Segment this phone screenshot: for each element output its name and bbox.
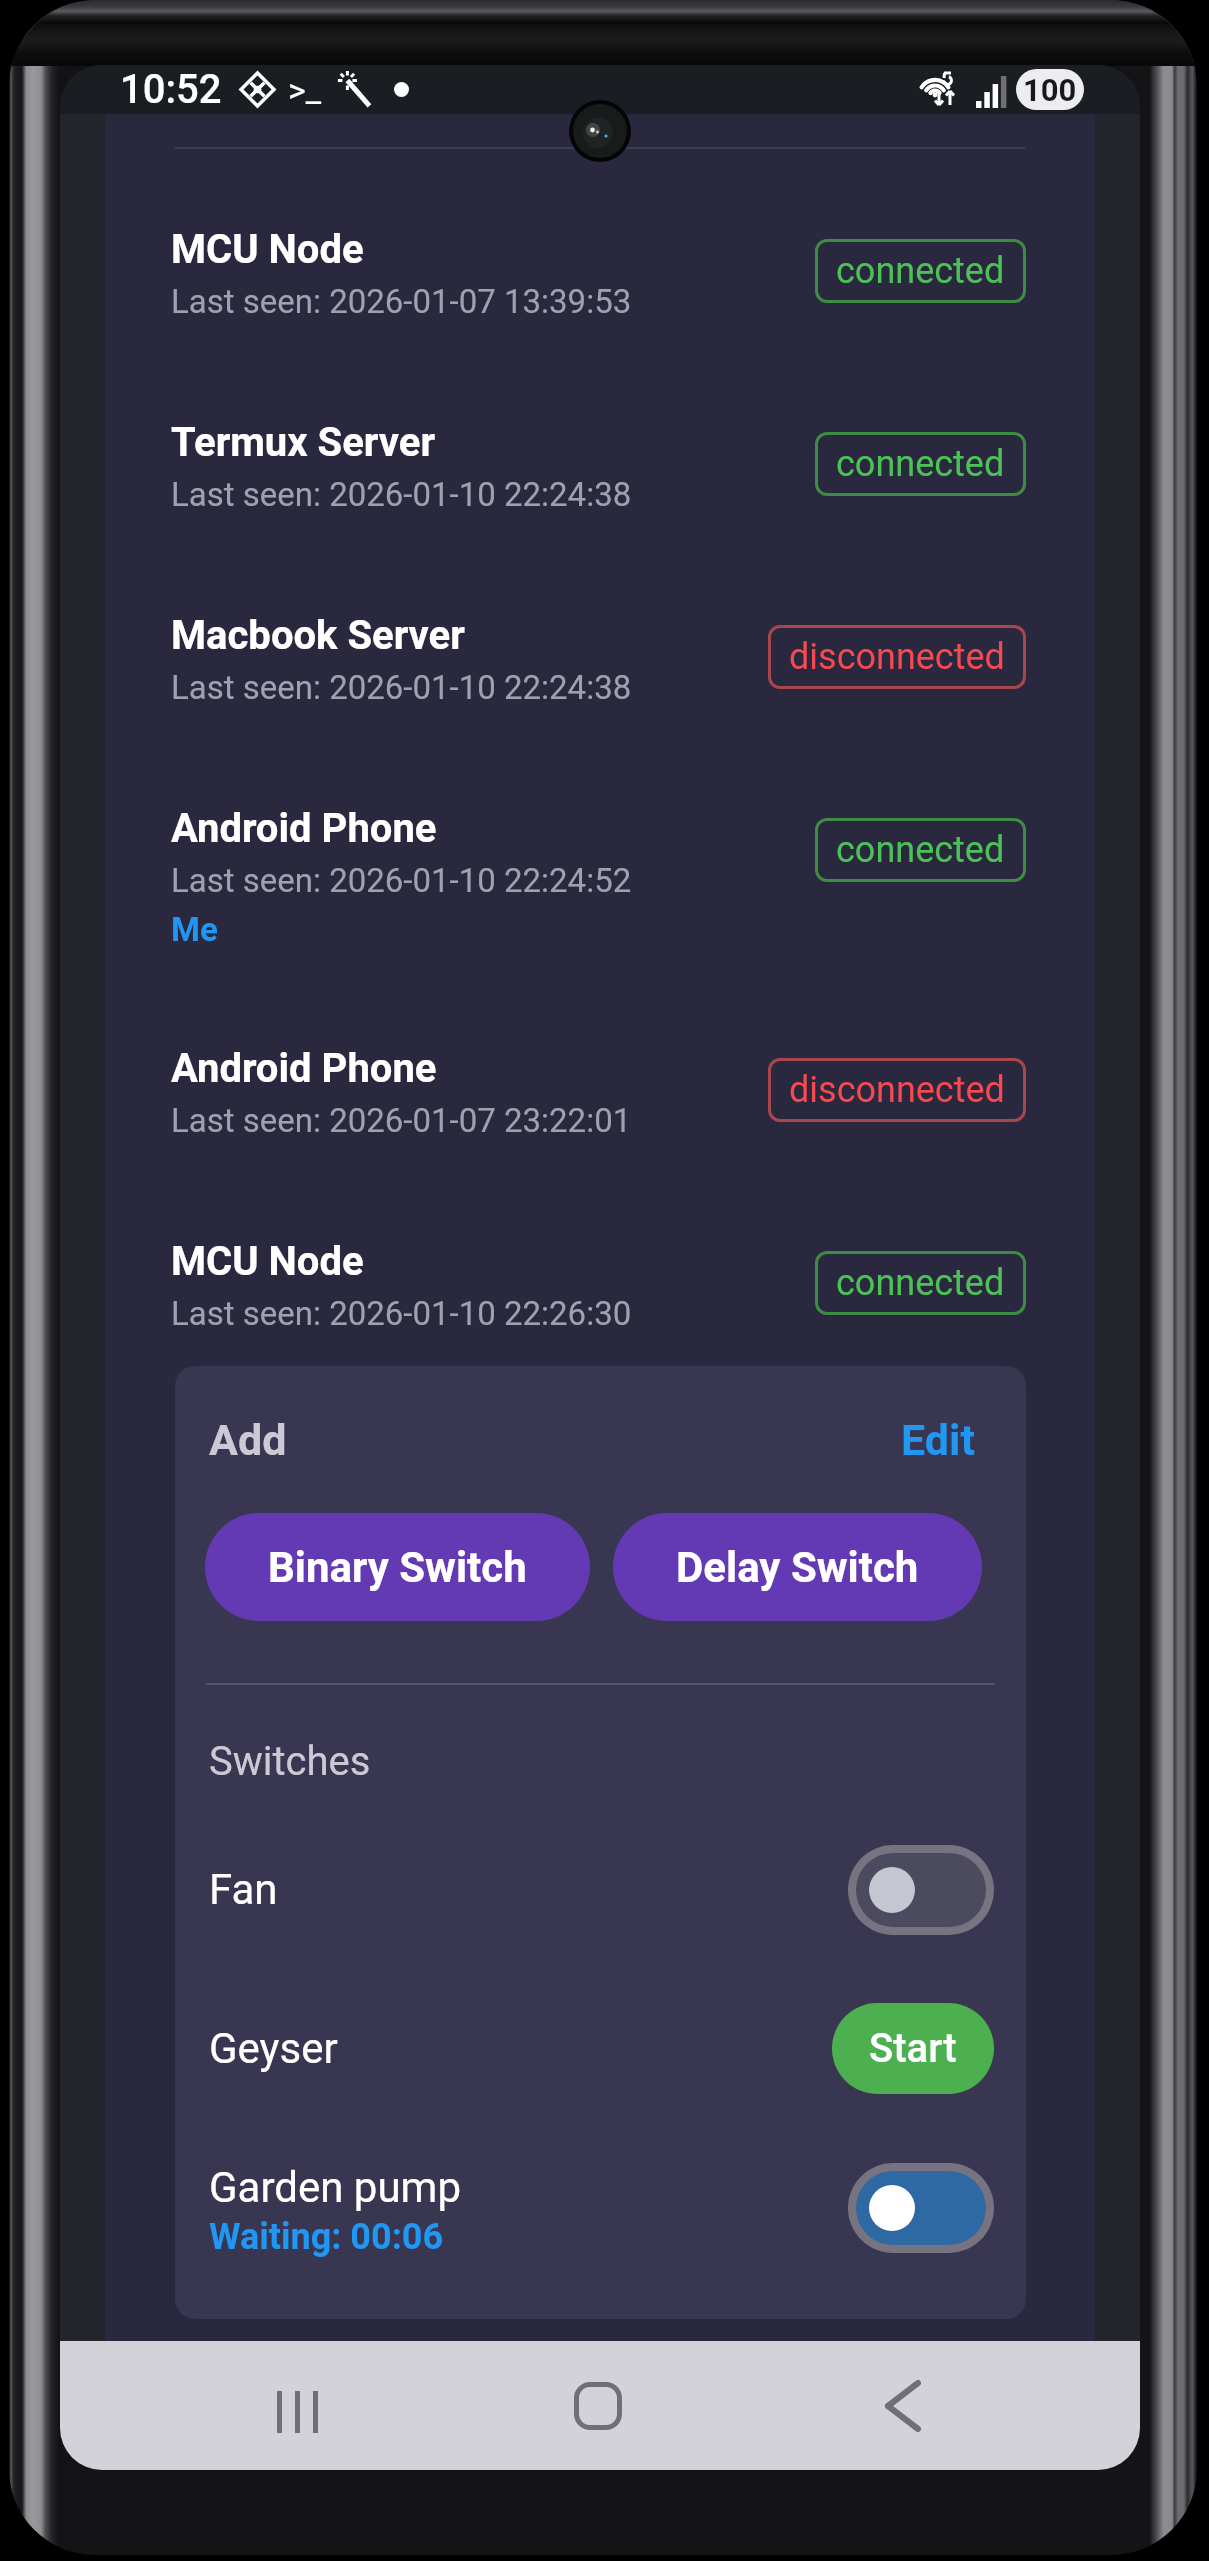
staticText: Fan (209, 1865, 278, 1914)
staticText: 10:52 (120, 66, 222, 113)
staticText: Last seen: 2026-01-10 22:24:52 (171, 861, 632, 900)
button[interactable]: connected (815, 432, 1026, 496)
staticText: Me (171, 910, 218, 949)
staticText: Binary Switch (268, 1543, 527, 1592)
staticText: Garden pump (209, 2163, 462, 2212)
button[interactable]: Back (823, 2341, 983, 2470)
staticText: disconnected (789, 1069, 1005, 1111)
button[interactable]: Geyser (175, 1986, 1026, 2106)
staticText: connected (836, 250, 1005, 292)
staticText: Last seen: 2026-01-07 13:39:53 (171, 282, 632, 321)
staticText: Delay Switch (676, 1543, 919, 1592)
button[interactable]: Start (832, 2003, 994, 2094)
button[interactable]: Add (209, 1415, 287, 1465)
staticText: Start (869, 2025, 957, 2072)
staticText: 100 (1023, 72, 1077, 108)
staticText: Last seen: 2026-01-10 22:24:38 (171, 475, 632, 514)
staticText: Last seen: 2026-01-10 22:24:38 (171, 668, 632, 707)
button[interactable]: Garden pump (175, 2136, 1026, 2276)
button[interactable]: Macbook Server (105, 612, 1095, 805)
button[interactable]: MCU Node (105, 226, 1095, 419)
staticText: MCU Node (171, 1238, 364, 1285)
staticText: connected (836, 829, 1005, 871)
button[interactable]: Fan switch, off (856, 1853, 986, 1927)
button[interactable]: Edit (901, 1415, 975, 1465)
staticText: Waiting: 00:06 (209, 2216, 444, 2258)
staticText: Last seen: 2026-01-10 22:26:30 (171, 1294, 632, 1333)
button[interactable]: Delay Switch (613, 1513, 982, 1621)
staticText: Last seen: 2026-01-07 23:22:01 (171, 1101, 632, 1140)
staticText: disconnected (789, 636, 1005, 678)
button[interactable]: Android Phone (105, 1045, 1095, 1238)
staticText: >_ (288, 70, 322, 110)
button[interactable]: Termux Server (105, 419, 1095, 612)
staticText: Geyser (209, 2024, 338, 2073)
button[interactable]: connected (815, 1251, 1026, 1315)
button[interactable]: Garden pump switch, on (856, 2171, 986, 2245)
button[interactable]: disconnected (768, 625, 1026, 689)
staticText: Add (209, 1415, 287, 1465)
staticText: Switches (209, 1738, 371, 1785)
staticText: MCU Node (171, 226, 364, 273)
staticText: Edit (901, 1415, 975, 1465)
button[interactable]: Binary Switch (205, 1513, 590, 1621)
button[interactable]: Android Phone (105, 805, 1095, 1045)
button[interactable]: disconnected (768, 1058, 1026, 1122)
staticText: connected (836, 1262, 1005, 1304)
button[interactable]: connected (815, 239, 1026, 303)
staticText: connected (836, 443, 1005, 485)
button[interactable]: Recent apps (218, 2347, 378, 2470)
staticText: Termux Server (171, 419, 435, 466)
button[interactable]: Fan (175, 1826, 1026, 1946)
button[interactable]: connected (815, 818, 1026, 882)
button[interactable]: Home (518, 2341, 678, 2470)
staticText: Android Phone (171, 805, 437, 852)
button[interactable]: MCU Node (105, 1238, 1095, 1366)
staticText: Macbook Server (171, 612, 465, 659)
staticText: Android Phone (171, 1045, 437, 1092)
